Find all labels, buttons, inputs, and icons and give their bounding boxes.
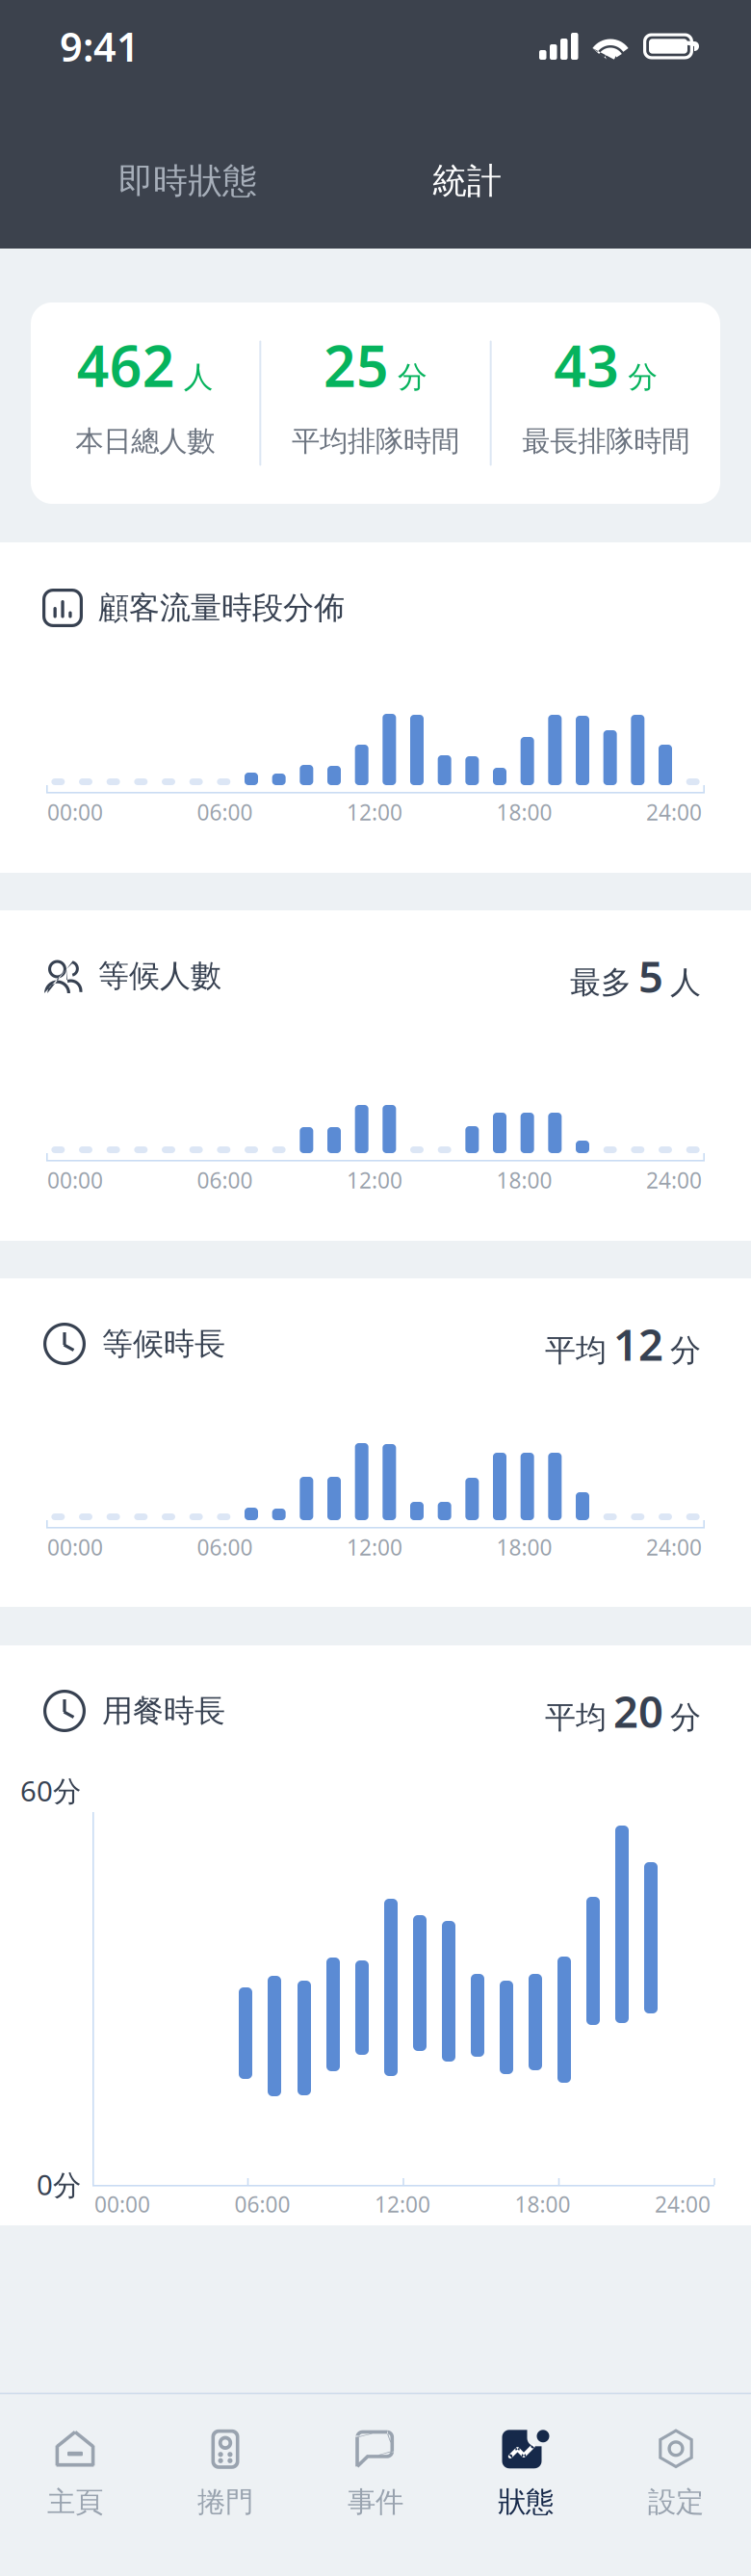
staticText: 43 (554, 328, 619, 403)
staticText: 18:00 (496, 1533, 552, 1562)
staticText: 本日總人數 (75, 424, 215, 458)
staticText: 平均 (545, 1332, 607, 1369)
staticText: 狀態 (498, 2485, 554, 2519)
staticText: 06:00 (234, 2190, 290, 2219)
staticText: 最長排隊時間 (522, 424, 690, 458)
button[interactable]: 捲門 (150, 2394, 300, 2576)
staticText: 事件 (348, 2485, 403, 2519)
button[interactable]: 主頁 (0, 2394, 150, 2576)
staticText: 設定 (648, 2485, 704, 2519)
staticText: 24:00 (646, 798, 702, 827)
staticText: 25 (324, 328, 389, 403)
staticText: 24:00 (655, 2190, 711, 2219)
staticText: 5 (638, 947, 663, 1005)
staticText: 18:00 (496, 1166, 552, 1195)
staticText: 等候人數 (98, 957, 221, 995)
button[interactable]: 即時狀態 (89, 127, 287, 235)
button[interactable]: 設定 (601, 2394, 751, 2576)
staticText: 捲門 (197, 2485, 253, 2519)
staticText: 18:00 (496, 798, 552, 827)
button[interactable]: 事件 (300, 2394, 451, 2576)
staticText: 12:00 (375, 2190, 430, 2219)
staticText: 12:00 (347, 798, 402, 827)
staticText: 等候時長 (102, 1325, 225, 1363)
staticText: 24:00 (646, 1533, 702, 1562)
button[interactable]: 統計 (402, 127, 531, 235)
staticText: 00:00 (47, 1166, 103, 1195)
staticText: 12:00 (347, 1166, 402, 1195)
staticText: 用餐時長 (102, 1692, 225, 1730)
staticText: 人 (670, 964, 701, 1001)
staticText: 12:00 (347, 1533, 402, 1562)
staticText: 分 (670, 1332, 701, 1369)
staticText: 00:00 (47, 798, 103, 827)
staticText: 平均排隊時間 (292, 424, 459, 458)
staticText: 0分 (37, 2166, 81, 2203)
staticText: 06:00 (197, 798, 253, 827)
staticText: 24:00 (646, 1166, 702, 1195)
staticText: 462 (77, 328, 175, 403)
staticText: 最多 (570, 964, 632, 1001)
staticText: 20 (613, 1682, 663, 1740)
staticText: 分 (670, 1699, 701, 1737)
staticText: 06:00 (197, 1166, 253, 1195)
staticText: 60分 (20, 1772, 81, 1809)
staticText: 分 (398, 359, 427, 395)
staticText: 統計 (432, 160, 502, 202)
staticText: 9:41 (60, 20, 140, 73)
staticText: 顧客流量時段分佈 (98, 589, 345, 627)
button[interactable]: 狀態 (451, 2394, 601, 2576)
staticText: 00:00 (47, 1533, 103, 1562)
staticText: 00:00 (94, 2190, 150, 2219)
staticText: 主頁 (47, 2485, 103, 2519)
staticText: 分 (628, 359, 658, 395)
staticText: 06:00 (197, 1533, 253, 1562)
staticText: 18:00 (515, 2190, 570, 2219)
staticText: 人 (184, 359, 213, 395)
staticText: 12 (613, 1315, 663, 1373)
staticText: 即時狀態 (118, 160, 257, 202)
staticText: 平均 (545, 1699, 607, 1737)
